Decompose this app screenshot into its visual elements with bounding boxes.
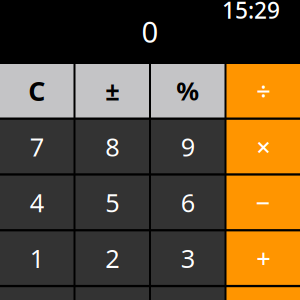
button[interactable]: Divide bbox=[226, 64, 300, 117]
button[interactable]: Subtract bbox=[226, 176, 300, 229]
button[interactable]: Equals bbox=[226, 287, 300, 300]
staticText: 4 bbox=[30, 185, 44, 219]
button[interactable]: 2 bbox=[75, 231, 149, 285]
staticText: C bbox=[28, 73, 45, 108]
staticText: 1 bbox=[30, 241, 44, 275]
button[interactable]: 5 bbox=[75, 176, 149, 229]
staticText: × bbox=[256, 130, 270, 163]
button[interactable]: 8 bbox=[75, 120, 149, 173]
staticText: % bbox=[176, 74, 199, 107]
button[interactable]: 9 bbox=[151, 120, 224, 173]
staticText: + bbox=[256, 241, 270, 275]
button[interactable]: 7 bbox=[0, 120, 73, 173]
staticText: − bbox=[256, 185, 271, 219]
button[interactable]: Multiply bbox=[226, 120, 300, 173]
staticText: 15:29 bbox=[222, 0, 280, 25]
button[interactable]: 4 bbox=[0, 176, 73, 229]
staticText: 7 bbox=[30, 130, 44, 163]
staticText: 2 bbox=[105, 241, 119, 275]
staticText: 6 bbox=[181, 185, 195, 219]
staticText: 8 bbox=[105, 130, 119, 163]
staticText: ÷ bbox=[256, 74, 270, 107]
staticText: 5 bbox=[105, 185, 119, 219]
button[interactable]: 0 bbox=[0, 287, 73, 300]
staticText: ± bbox=[105, 74, 119, 107]
staticText: 0 bbox=[141, 12, 158, 51]
button[interactable]: Percent bbox=[151, 64, 224, 117]
button[interactable]: 1 bbox=[0, 231, 73, 285]
button[interactable]: Plus minus bbox=[75, 64, 149, 117]
button[interactable]: Clear bbox=[0, 64, 73, 117]
staticText: 3 bbox=[181, 241, 195, 275]
button[interactable]: Add bbox=[226, 231, 300, 285]
staticText: 9 bbox=[181, 130, 195, 163]
button[interactable]: 6 bbox=[151, 176, 224, 229]
button[interactable]: 3 bbox=[151, 231, 224, 285]
